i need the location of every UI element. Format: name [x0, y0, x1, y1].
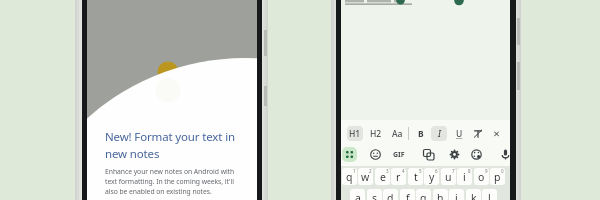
staticText: 3 — [386, 168, 389, 174]
staticText: r — [396, 170, 401, 184]
staticText: I — [438, 128, 441, 140]
button[interactable]: j — [449, 189, 464, 200]
button[interactable]: k — [466, 189, 481, 200]
button[interactable]: f — [400, 189, 415, 200]
staticText: Enhance your new notes on Android with t… — [105, 167, 235, 196]
button[interactable]: B — [413, 126, 429, 141]
button[interactable]: r — [391, 168, 406, 185]
staticText: u — [445, 170, 452, 184]
staticText: H2 — [370, 128, 382, 140]
button[interactable] — [342, 147, 357, 162]
button[interactable]: p — [490, 168, 505, 185]
button[interactable]: h — [433, 189, 448, 200]
button[interactable] — [470, 126, 486, 141]
button[interactable]: u — [441, 168, 456, 185]
staticText: 4 — [402, 168, 405, 174]
button[interactable]: t — [408, 168, 423, 185]
button[interactable]: s — [367, 189, 382, 200]
staticText: d — [387, 191, 394, 200]
staticText: t — [414, 170, 418, 184]
button[interactable]: g — [416, 189, 431, 200]
button[interactable]: GIF — [393, 150, 405, 160]
button[interactable]: y — [424, 168, 439, 185]
staticText: f — [406, 191, 410, 200]
staticText: ✕ — [493, 129, 501, 139]
staticText: 6 — [435, 168, 438, 174]
button[interactable]: q — [342, 168, 357, 185]
staticText: U — [456, 128, 463, 140]
staticText: j — [455, 191, 458, 200]
staticText: H1 — [349, 128, 361, 140]
staticText: w — [361, 170, 370, 184]
staticText: p — [494, 170, 501, 184]
button[interactable]: Aa — [389, 126, 405, 141]
staticText: s — [372, 191, 378, 200]
staticText: e — [380, 170, 386, 184]
staticText: k — [471, 191, 477, 200]
button[interactable]: d — [383, 189, 398, 200]
staticText: 7 — [452, 168, 455, 174]
staticText: l — [488, 191, 491, 200]
button[interactable]: l — [482, 189, 497, 200]
staticText: 1 — [353, 168, 356, 174]
button[interactable]: I — [431, 126, 447, 141]
button[interactable]: a — [350, 189, 365, 200]
staticText: 2 — [369, 168, 372, 174]
button[interactable]: e — [375, 168, 390, 185]
staticText: 8 — [468, 168, 471, 174]
button[interactable] — [368, 147, 383, 162]
staticText: B — [418, 128, 424, 140]
button[interactable]: U — [451, 126, 467, 141]
button[interactable]: H2 — [368, 126, 384, 141]
button[interactable] — [421, 147, 436, 162]
staticText: y — [429, 170, 435, 184]
button[interactable] — [447, 147, 462, 162]
button[interactable]: i — [457, 168, 472, 185]
staticText: a — [355, 191, 361, 200]
staticText: Aa — [392, 128, 403, 140]
button[interactable]: H1 — [347, 126, 363, 141]
button[interactable] — [469, 147, 484, 162]
staticText: g — [420, 191, 427, 200]
staticText: q — [346, 170, 353, 184]
staticText: 0 — [501, 168, 504, 174]
button[interactable]: w — [358, 168, 373, 185]
button[interactable]: New! Format your text in new notes — [105, 129, 235, 162]
button[interactable]: ✕ — [489, 126, 505, 141]
staticText: 9 — [485, 168, 488, 174]
staticText: 5 — [419, 168, 422, 174]
staticText: i — [463, 170, 466, 184]
button[interactable]: o — [474, 168, 489, 185]
button[interactable] — [498, 147, 510, 162]
staticText: o — [478, 170, 485, 184]
staticText: h — [437, 191, 444, 200]
